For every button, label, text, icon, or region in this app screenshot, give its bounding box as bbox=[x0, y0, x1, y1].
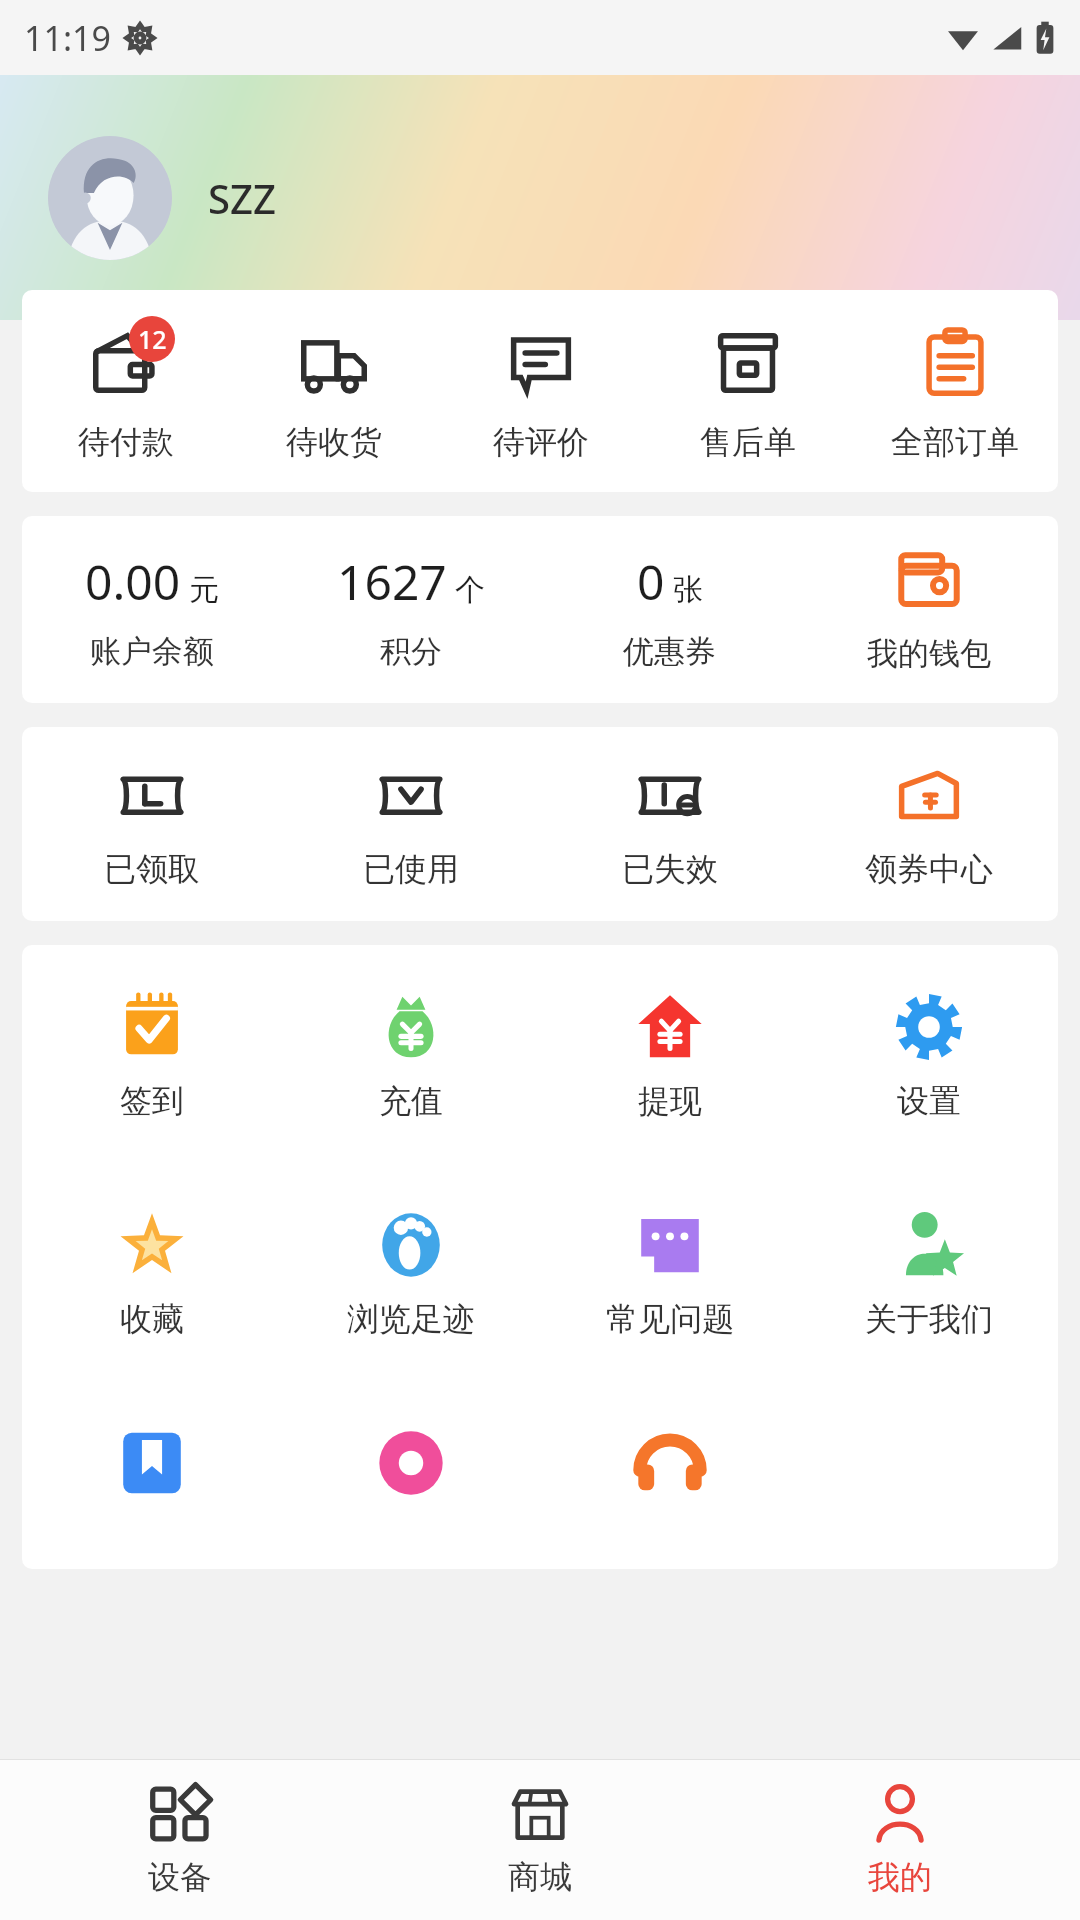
button[interactable]: 我的 bbox=[720, 1760, 1080, 1920]
button[interactable]: 全部订单 bbox=[851, 312, 1058, 470]
staticText: 收藏 bbox=[120, 1299, 184, 1339]
button[interactable]: 0 bbox=[540, 549, 799, 671]
staticText: 关于我们 bbox=[865, 1299, 993, 1339]
staticText: 提现 bbox=[638, 1081, 702, 1121]
staticText: 常见问题 bbox=[606, 1299, 734, 1339]
staticText: SZZ bbox=[208, 171, 276, 225]
staticText: 设置 bbox=[897, 1081, 961, 1121]
button[interactable]: 已领取 bbox=[22, 753, 281, 895]
staticText: 0 bbox=[637, 549, 665, 614]
staticText: 我的 bbox=[868, 1857, 932, 1897]
staticText: 全部订单 bbox=[891, 422, 1019, 462]
button[interactable]: 售后单 bbox=[644, 312, 851, 470]
staticText: 已失效 bbox=[622, 849, 718, 889]
button[interactable]: 客服 bbox=[634, 1427, 706, 1499]
staticText: 账户余额 bbox=[90, 632, 214, 671]
button[interactable]: 我的钱包 bbox=[799, 546, 1058, 673]
button[interactable]: 已失效 bbox=[540, 753, 799, 895]
button[interactable]: 签到 bbox=[22, 991, 281, 1121]
button[interactable]: 领券中心 bbox=[799, 753, 1058, 895]
staticText: 领券中心 bbox=[865, 849, 993, 889]
button[interactable]: 常见问题 bbox=[540, 1209, 799, 1339]
staticText: 设备 bbox=[148, 1857, 212, 1897]
staticText: 优惠券 bbox=[623, 632, 716, 671]
staticText: 售后单 bbox=[700, 422, 796, 462]
staticText: 签到 bbox=[120, 1081, 184, 1121]
button[interactable]: 关于我们 bbox=[799, 1209, 1058, 1339]
staticText: 待付款 bbox=[78, 422, 174, 462]
staticText: 12 bbox=[138, 322, 167, 356]
button[interactable]: 设备 bbox=[0, 1760, 360, 1920]
button[interactable]: 待评价 bbox=[437, 312, 644, 470]
staticText: 元 bbox=[189, 571, 219, 609]
button[interactable]: 1627 bbox=[281, 549, 540, 671]
staticText: 浏览足迹 bbox=[347, 1299, 475, 1339]
staticText: 张 bbox=[673, 571, 703, 609]
button[interactable]: 收藏 bbox=[22, 1209, 281, 1339]
staticText: 个 bbox=[455, 571, 485, 609]
staticText: 0.00 bbox=[85, 549, 181, 614]
staticText: 充值 bbox=[379, 1081, 443, 1121]
staticText: 已领取 bbox=[104, 849, 200, 889]
button[interactable]: Profile photo bbox=[48, 136, 276, 260]
staticText: 已使用 bbox=[363, 849, 459, 889]
staticText: 商城 bbox=[508, 1857, 572, 1897]
button[interactable]: 0.00 bbox=[22, 549, 281, 671]
button[interactable]: 门店 bbox=[375, 1427, 447, 1499]
button[interactable]: 商城 bbox=[360, 1760, 720, 1920]
button[interactable]: 12 bbox=[22, 312, 230, 470]
button[interactable]: 提现 bbox=[540, 991, 799, 1121]
staticText: 待收货 bbox=[286, 422, 382, 462]
staticText: 我的钱包 bbox=[867, 634, 991, 673]
button[interactable]: 待收货 bbox=[230, 312, 437, 470]
button[interactable]: 设置 bbox=[799, 991, 1058, 1121]
staticText: 1627 bbox=[337, 549, 447, 614]
button[interactable]: 充值 bbox=[281, 991, 540, 1121]
staticText: 待评价 bbox=[493, 422, 589, 462]
staticText: 积分 bbox=[380, 632, 442, 671]
other: Profile photo bbox=[48, 136, 172, 260]
button[interactable]: 浏览足迹 bbox=[281, 1209, 540, 1339]
staticText: 11:19 bbox=[24, 15, 111, 61]
button[interactable]: 文章 bbox=[116, 1427, 188, 1499]
button[interactable]: 已使用 bbox=[281, 753, 540, 895]
